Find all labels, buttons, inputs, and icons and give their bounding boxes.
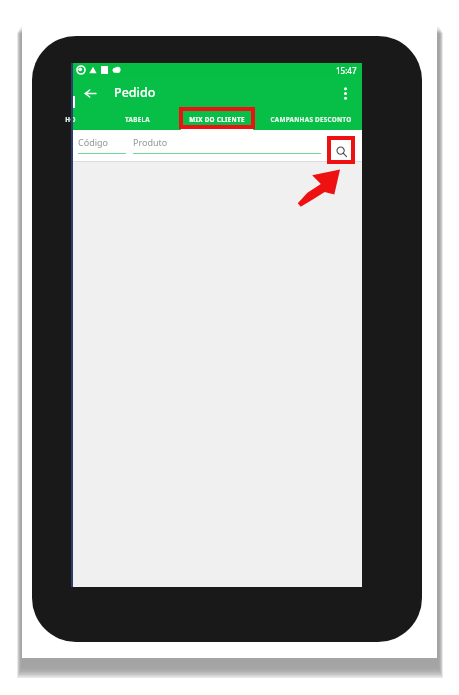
button[interactable]: More options (334, 82, 356, 104)
button[interactable]: Produto (133, 136, 321, 154)
staticText: MIX DO CLIENTE (189, 115, 245, 124)
button[interactable]: Código (78, 136, 126, 154)
staticText: HO (65, 115, 76, 124)
button[interactable]: TABELA (101, 108, 173, 130)
staticText: TABELA (125, 115, 150, 124)
button[interactable]: HO (45, 108, 95, 130)
button[interactable]: CAMPANHAS DESCONTO (257, 108, 365, 130)
button[interactable]: Back (79, 82, 101, 104)
button[interactable]: MIX DO CLIENTE (181, 108, 253, 130)
staticText: Pedido (114, 84, 156, 101)
staticText: CAMPANHAS DESCONTO (270, 115, 352, 124)
button[interactable]: Search (330, 140, 352, 162)
staticText: 15:47 (336, 65, 357, 76)
staticText: Código (78, 136, 108, 148)
staticText: Produto (133, 136, 168, 148)
